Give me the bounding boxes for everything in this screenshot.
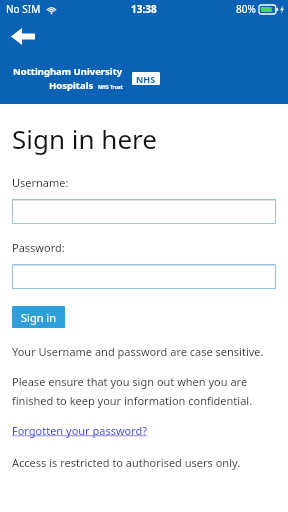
- button[interactable]: Back: [8, 23, 38, 49]
- staticText: Username:: [12, 175, 69, 190]
- button[interactable]: Forgotten your password?: [12, 423, 148, 438]
- staticText: finished to keep your information confid…: [12, 393, 253, 408]
- staticText: Sign in: [21, 310, 56, 325]
- staticText: Nottingham University: [13, 65, 123, 78]
- staticText: Sign in here: [12, 121, 157, 156]
- staticText: Your Username and password are case sens…: [12, 344, 264, 359]
- button[interactable]: Username field: [12, 199, 276, 224]
- staticText: Hospitals: [49, 79, 94, 92]
- staticText: Please ensure that you sign out when you…: [12, 374, 248, 389]
- button[interactable]: Sign in: [12, 306, 65, 328]
- button[interactable]: Password field: [12, 264, 276, 289]
- staticText: No SIM: [6, 2, 41, 16]
- staticText: 13:38: [131, 2, 157, 16]
- staticText: Forgotten your password?: [12, 423, 148, 438]
- staticText: NHS: [136, 73, 156, 85]
- staticText: Password:: [12, 240, 65, 255]
- staticText: 80%: [236, 2, 256, 16]
- staticText: NHS Trust: [98, 84, 123, 91]
- staticText: Access is restricted to authorised users…: [12, 455, 241, 470]
